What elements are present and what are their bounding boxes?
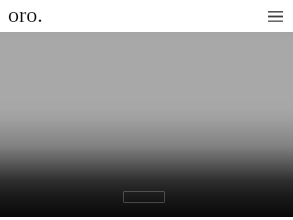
button[interactable]: Shop the collection	[123, 191, 165, 203]
staticText: oro.	[8, 2, 43, 26]
button[interactable]: Open navigation menu	[262, 3, 288, 29]
button[interactable]: oro.	[0, 0, 52, 32]
